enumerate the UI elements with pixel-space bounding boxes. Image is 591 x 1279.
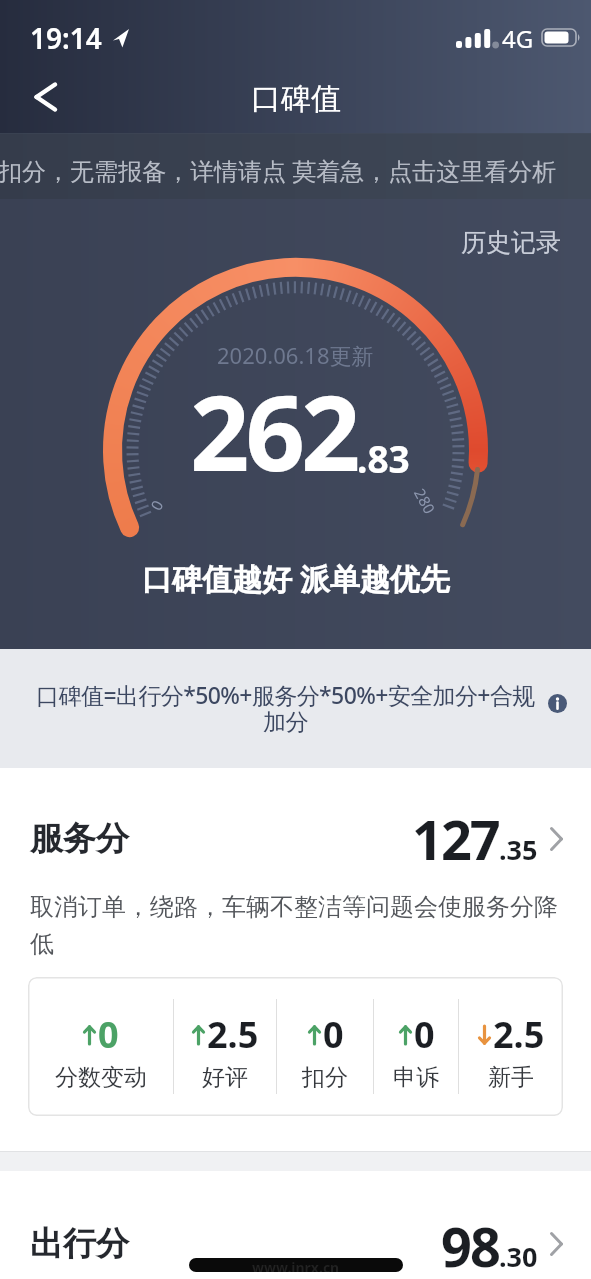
staticText: 口碑值越好 派单越优先: [142, 558, 450, 599]
staticText: .30: [499, 1238, 538, 1275]
staticText: 0: [146, 496, 167, 514]
staticText: www.inrx.cn: [252, 1258, 340, 1272]
button[interactable]: [548, 694, 567, 713]
staticText: 扣分，无需报备，详情请点 莫着急，点击这里看分析: [0, 154, 557, 187]
button[interactable]: [24, 76, 66, 118]
staticText: 服务分: [30, 818, 129, 860]
button[interactable]: 0: [277, 986, 373, 1116]
staticText: 127: [412, 802, 499, 876]
staticText: 262: [190, 360, 357, 502]
staticText: 取消订单，绕路，车辆不整洁等问题会使服务分降低: [30, 892, 563, 959]
button[interactable]: 0: [28, 986, 173, 1116]
staticText: 98: [441, 1209, 499, 1279]
staticText: 好评: [202, 1063, 248, 1092]
staticText: 4G: [502, 22, 534, 55]
staticText: 出行分: [30, 1223, 129, 1265]
button[interactable]: 出行分: [30, 1209, 563, 1279]
staticText: 0: [414, 1010, 435, 1059]
staticText: 19:14: [30, 19, 102, 57]
staticText: 2.5: [493, 1010, 545, 1059]
staticText: 0: [98, 1010, 119, 1059]
staticText: .35: [499, 831, 538, 868]
staticText: 新手: [488, 1063, 534, 1092]
button[interactable]: 扣分，无需报备，详情请点 莫着急，点击这里看分析: [0, 133, 591, 199]
staticText: 分数变动: [55, 1063, 147, 1092]
staticText: .83: [357, 433, 410, 483]
staticText: 扣分: [302, 1063, 348, 1092]
button[interactable]: 服务分: [30, 802, 563, 876]
button[interactable]: 0: [374, 986, 458, 1116]
button[interactable]: 历史记录: [461, 227, 561, 258]
staticText: 2020.06.18更新: [217, 340, 374, 370]
button[interactable]: 2.5: [459, 986, 563, 1116]
button[interactable]: 2.5: [174, 986, 276, 1116]
staticText: 0: [323, 1010, 344, 1059]
staticText: 2.5: [207, 1010, 259, 1059]
staticText: 280: [410, 485, 440, 517]
staticText: 口碑值: [251, 80, 341, 118]
staticText: 口碑值=出行分*50%+服务分*50%+安全加分+合规 加分: [36, 679, 535, 737]
staticText: 申诉: [393, 1063, 439, 1092]
